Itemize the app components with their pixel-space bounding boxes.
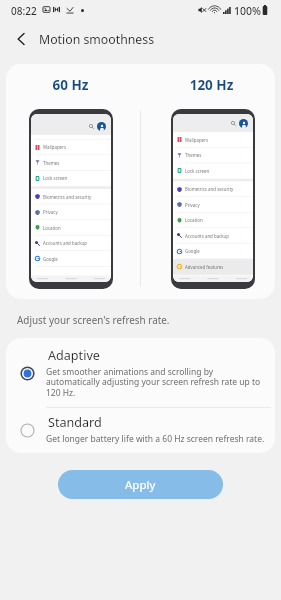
staticText: Lock screen — [43, 175, 68, 181]
staticText: Location — [185, 217, 203, 223]
staticText: Biometrics and security — [43, 194, 92, 200]
staticText: Biometrics and security — [185, 186, 234, 192]
staticText: Motion smoothness — [39, 31, 155, 48]
staticText: Google — [43, 256, 58, 262]
staticText: Adaptive — [48, 347, 100, 364]
button[interactable]: Standard — [6, 408, 275, 453]
staticText: Accounts and backup — [185, 233, 229, 239]
staticText: 60 Hz — [10, 76, 131, 94]
staticText: Google — [185, 248, 200, 254]
button[interactable]: Apply — [58, 470, 223, 499]
staticText: Get longer battery life with a 60 Hz scr… — [46, 433, 268, 445]
staticText: Advanced features — [185, 264, 224, 270]
button[interactable]: Adaptive — [6, 341, 275, 407]
staticText: 08:22 — [11, 4, 37, 18]
staticText: Lock screen — [185, 168, 210, 174]
button[interactable]: Navigate up — [8, 26, 34, 52]
staticText: Standard — [48, 414, 102, 431]
staticText: 100% — [234, 4, 261, 18]
staticText: Privacy — [185, 202, 200, 208]
staticText: Apply — [125, 477, 156, 493]
staticText: Wallpapers — [43, 144, 66, 150]
staticText: 120 Hz — [151, 76, 272, 94]
staticText: Wallpapers — [185, 137, 208, 143]
staticText: Adjust your screen's refresh rate. — [17, 313, 170, 326]
staticText: Location — [43, 225, 61, 231]
staticText: Themes — [43, 160, 60, 166]
staticText: Accounts and backup — [43, 240, 87, 246]
staticText: Themes — [185, 152, 202, 158]
staticText: Get smoother animations and scrolling by… — [46, 366, 268, 399]
staticText: Privacy — [43, 209, 58, 215]
